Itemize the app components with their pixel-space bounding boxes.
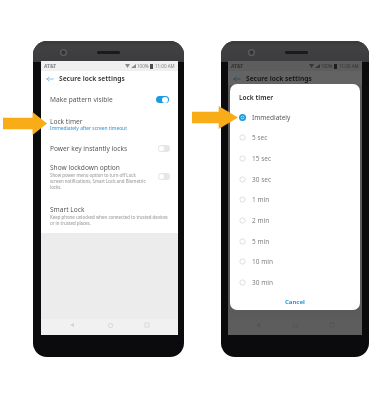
button[interactable]: Back [233,75,241,83]
staticText: 1 min [252,195,270,204]
staticText: Lock timer [50,117,83,126]
staticText: 15 sec [252,154,272,163]
button[interactable]: Toggle on [156,96,169,103]
staticText: 5 sec [252,133,268,142]
staticText: Smart Lock [50,205,85,214]
staticText: 11:00 AM [339,63,359,69]
staticText: 2 min [252,216,270,225]
staticText: Lock timer [239,93,274,102]
staticText: Power key instantly locks [50,144,128,153]
staticText: AT&T [44,63,57,70]
button[interactable]: 10 min [230,251,360,272]
staticText: Immediately [252,113,291,122]
button[interactable]: 5 min [230,231,360,252]
staticText: 30 sec [252,175,272,184]
button[interactable]: 30 sec [230,169,360,190]
staticText: 10 min [252,257,273,266]
button[interactable]: Toggle off [158,173,170,180]
button[interactable]: Cancel [230,296,360,308]
button[interactable]: 1 min [230,189,360,210]
staticText: 100% [321,63,333,69]
button[interactable]: Back [46,75,54,83]
button[interactable]: Toggle off [158,145,170,152]
staticText: 11:00 AM [155,63,175,69]
button[interactable]: 15 sec [230,148,360,169]
button[interactable] [41,158,178,196]
button[interactable]: Back [65,318,79,332]
button[interactable] [41,89,178,111]
staticText: Show lockdown option [50,163,120,172]
button[interactable] [41,113,178,137]
button[interactable]: Recent apps [140,318,154,332]
staticText: AT&T [231,63,244,70]
staticText: 100% [137,63,149,69]
staticText: Cancel [285,298,305,306]
button[interactable]: 30 min [230,272,360,293]
staticText: Make pattern visible [50,95,113,104]
button[interactable]: Immediately [230,107,360,128]
button[interactable]: 5 sec [230,127,360,148]
staticText: Secure lock settings [59,74,125,83]
button[interactable]: 2 min [230,210,360,231]
staticText: Immediately after screen timeout [50,125,127,132]
staticText: Keep phone unlocked when connected to tr… [50,214,168,226]
button[interactable] [41,197,178,227]
staticText: Show power menu option to turn off Lock … [50,172,146,190]
staticText: 30 min [252,278,273,287]
button[interactable] [41,138,178,158]
button[interactable]: Home [103,318,117,332]
staticText: Secure lock settings [246,74,312,83]
staticText: 5 min [252,237,270,246]
